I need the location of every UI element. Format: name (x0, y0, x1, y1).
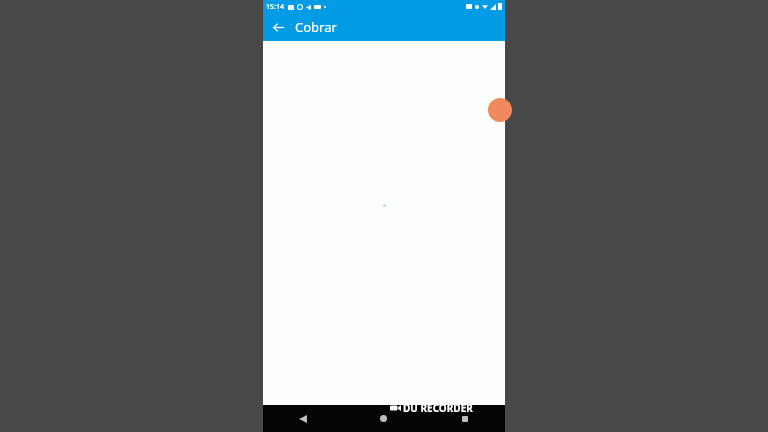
button[interactable]: Add (488, 98, 512, 122)
staticText: DU RECORDER (403, 401, 473, 415)
button[interactable]: Recent apps (424, 405, 505, 432)
button[interactable]: Back (263, 405, 343, 432)
button[interactable]: Back (267, 16, 289, 38)
staticText: Cobrar (295, 18, 337, 36)
staticText: 15:14 (266, 2, 284, 12)
button[interactable]: Home (343, 405, 424, 432)
